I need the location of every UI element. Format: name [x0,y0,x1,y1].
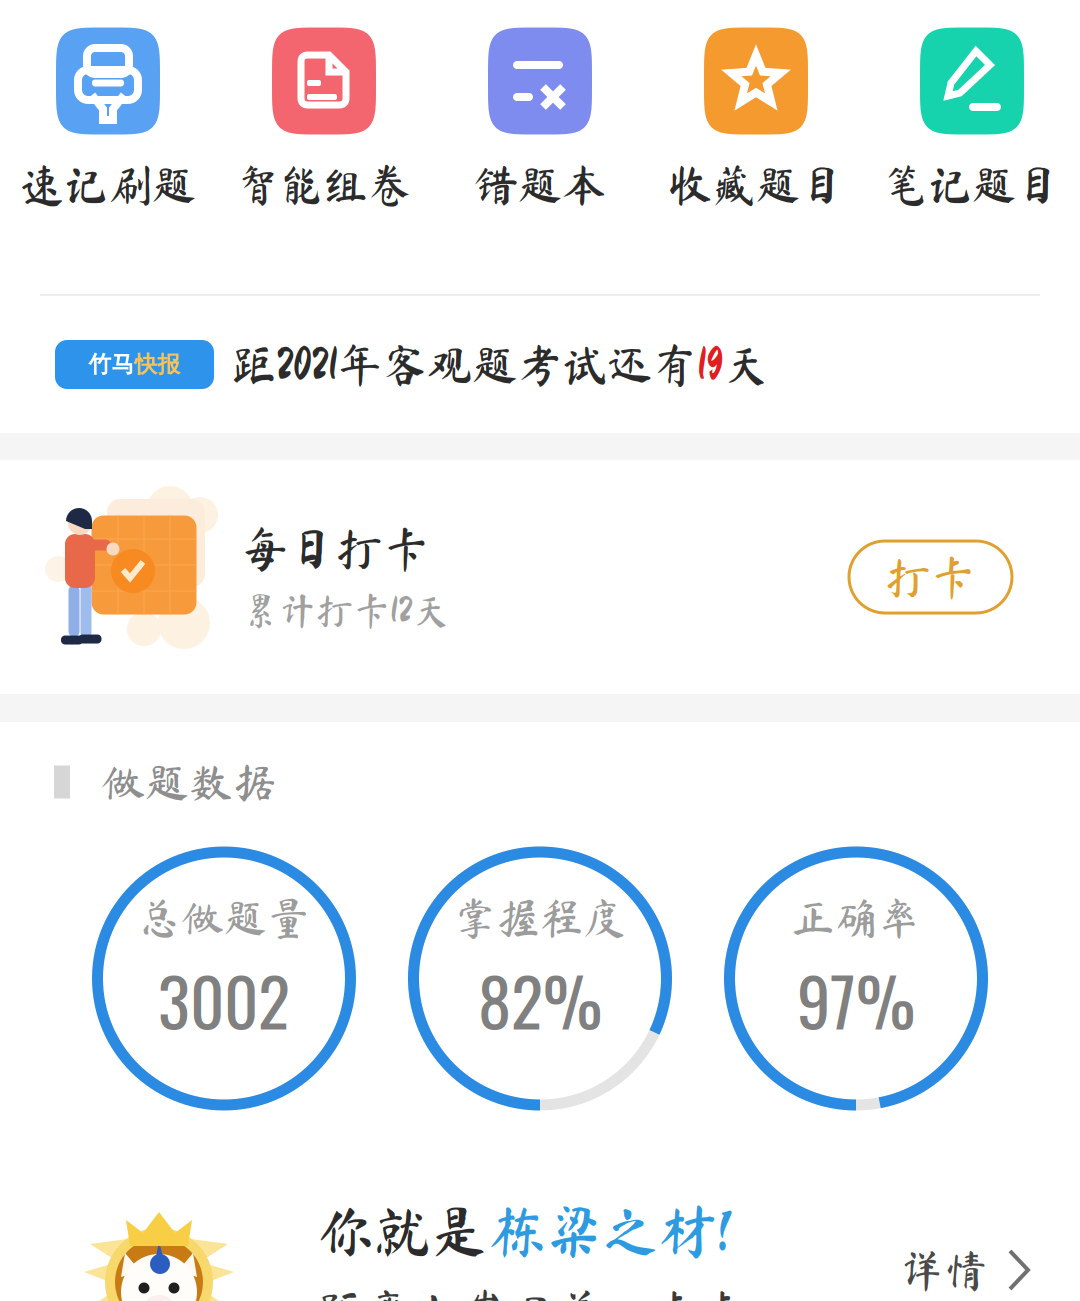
staticText: 详情 [900,1248,988,1292]
staticText: 天 [723,342,768,387]
button[interactable]: 收藏题目 [648,34,864,200]
staticText: 正确率 [791,896,920,939]
staticText: 竹马 [88,350,134,379]
staticText: 总做题量 [138,896,310,939]
staticText: 82% [478,950,602,1049]
staticText: 距2021年客观题考试还有 [231,342,697,387]
staticText: 累计打卡12天 [242,592,449,629]
staticText: 做题数据 [101,760,277,804]
staticText: 智能组卷 [236,162,412,206]
staticText: 速记刷题 [20,162,196,206]
staticText: 19 [697,342,723,387]
button[interactable]: 笔记题目 [864,34,1080,200]
button[interactable]: 每日打卡 [0,460,1080,694]
button[interactable]: 智能组卷 [216,34,432,200]
staticText: 打卡 [885,554,975,600]
button[interactable]: 速记刷题 [0,34,216,200]
staticText: 收藏题目 [668,162,844,206]
staticText: 97% [797,950,915,1049]
staticText: 错题本 [474,162,606,206]
staticText: 快报 [134,350,180,379]
button[interactable]: 你就是 [0,1113,1080,1301]
staticText: 笔记题目 [884,162,1060,206]
staticText: 你就是 [317,1202,488,1259]
staticText: 距离上岸只差一点点 [317,1287,749,1301]
staticText: 掌握程度 [454,896,626,939]
staticText: 每日打卡 [242,525,430,572]
button[interactable]: 错题本 [432,34,648,200]
staticText: 3002 [158,950,290,1049]
staticText: 栋梁之材! [488,1202,730,1259]
